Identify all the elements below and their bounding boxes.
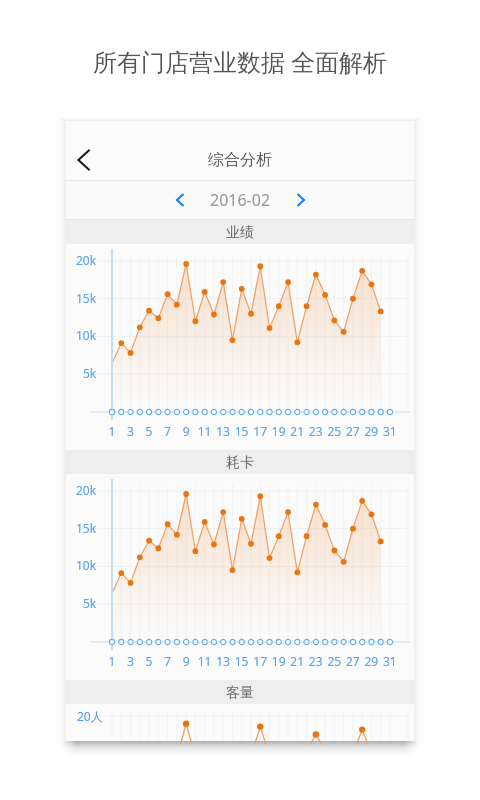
staticText: 所有门店营业数据 全面解析	[0, 45, 480, 78]
button[interactable]: 客量	[66, 680, 414, 704]
button[interactable]: Back	[62, 140, 102, 180]
button[interactable]: Chart	[66, 474, 414, 680]
button[interactable]: Next month	[287, 186, 315, 214]
staticText: 耗卡	[226, 454, 254, 472]
staticText: 业绩	[226, 224, 254, 242]
button[interactable]: 耗卡	[66, 450, 414, 474]
button[interactable]: 业绩	[66, 220, 414, 244]
staticText: 客量	[226, 684, 254, 702]
button[interactable]: 2016-02	[210, 181, 271, 219]
button[interactable]: Chart	[66, 244, 414, 450]
button[interactable]: Previous month	[166, 186, 194, 214]
staticText: 综合分析	[208, 150, 272, 170]
staticText: 2016-02	[210, 189, 271, 211]
